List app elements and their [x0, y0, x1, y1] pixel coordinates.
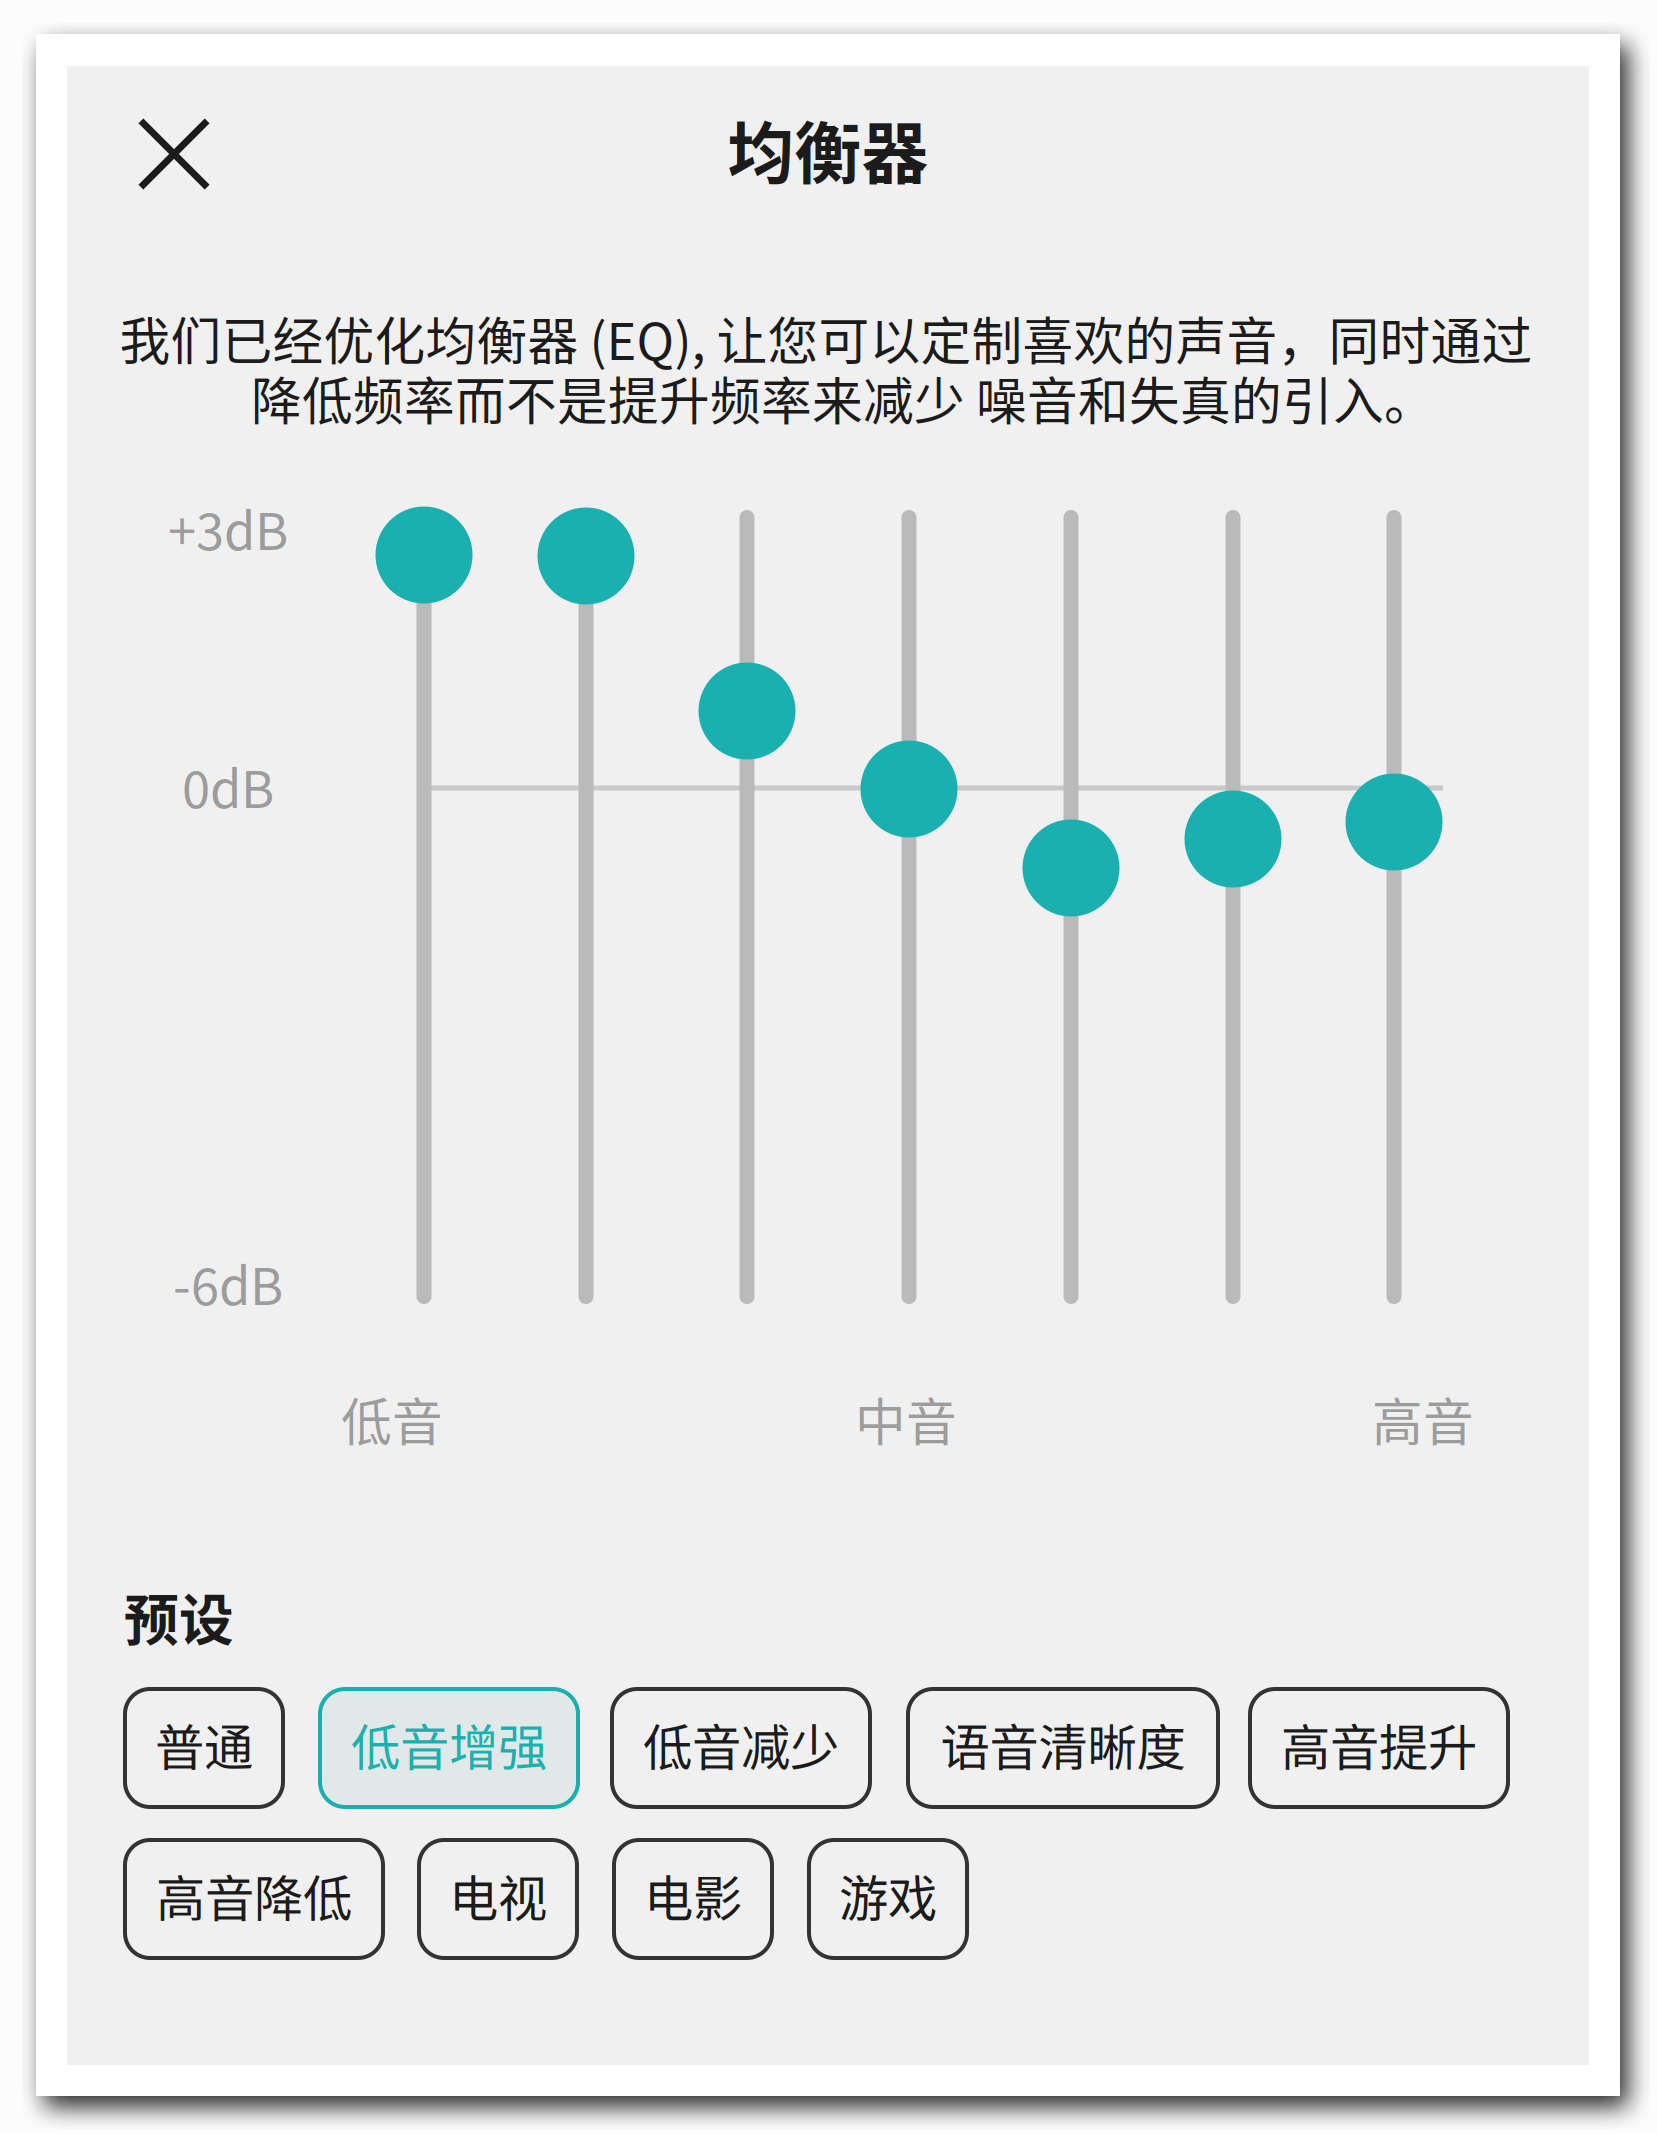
staticText: 语音清晰度: [940, 1708, 1185, 1780]
button[interactable]: 关闭: [104, 84, 244, 224]
button[interactable]: 高频 16 kHz: [1345, 773, 1442, 870]
staticText: 低音增强: [351, 1708, 547, 1780]
button[interactable]: 低音减少: [612, 1689, 870, 1807]
staticText: 预设: [124, 1576, 234, 1656]
button[interactable]: 低中频 125 Hz: [698, 662, 795, 759]
staticText: 高音提升: [1281, 1708, 1477, 1780]
staticText: 0dB: [182, 749, 274, 823]
staticText: 普通: [155, 1708, 253, 1780]
button[interactable]: 低频 64 Hz: [537, 507, 634, 604]
button[interactable]: 高音提升: [1250, 1689, 1508, 1807]
button[interactable]: 电视: [419, 1840, 577, 1958]
button[interactable]: 高频 8 kHz: [1184, 790, 1281, 887]
staticText: 高音降低: [156, 1859, 352, 1931]
button[interactable]: 高音降低: [125, 1840, 383, 1958]
button[interactable]: 普通: [125, 1689, 283, 1807]
staticText: 高音: [1372, 1382, 1474, 1456]
staticText: +3dB: [168, 491, 288, 565]
staticText: 降低频率而不是提升频率来减少 噪音和失真的引入。: [251, 361, 1435, 435]
staticText: 低音减少: [643, 1708, 839, 1780]
button[interactable]: 电影: [614, 1840, 772, 1958]
staticText: 电影: [644, 1859, 742, 1931]
staticText: 电视: [449, 1859, 547, 1931]
button[interactable]: 中高频 2 kHz: [1022, 819, 1119, 916]
staticText: 低音: [341, 1382, 443, 1456]
button[interactable]: 中频 500 Hz: [860, 740, 957, 837]
button[interactable]: 低频 32 Hz: [375, 506, 472, 603]
staticText: -6dB: [173, 1246, 283, 1320]
staticText: 我们已经优化均衡器 (EQ), 让您可以定制喜欢的声音，同时通过: [119, 301, 1532, 375]
button[interactable]: 语音清晰度: [908, 1689, 1218, 1807]
button[interactable]: 低音增强: [320, 1689, 578, 1807]
staticText: 均衡器: [727, 101, 928, 197]
staticText: 游戏: [839, 1859, 937, 1931]
button[interactable]: 游戏: [809, 1840, 967, 1958]
staticText: 中音: [855, 1382, 957, 1456]
